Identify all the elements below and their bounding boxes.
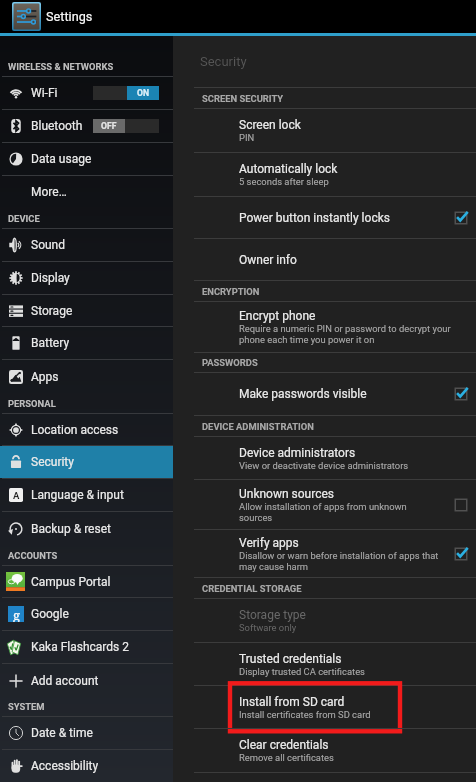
- button[interactable]: Device administrators: [173, 437, 476, 480]
- staticText: WIRELESS & NETWORKS: [8, 61, 114, 72]
- staticText: Wi-Fi: [31, 86, 58, 100]
- other: Settings app icon: [12, 2, 41, 31]
- staticText: Encrypt phone: [239, 309, 316, 323]
- staticText: Campus Portal: [31, 575, 111, 589]
- staticText: g: [13, 606, 20, 622]
- staticText: PASSWORDS: [202, 357, 258, 368]
- staticText: Remove all certificates: [239, 752, 334, 763]
- staticText: ENCRYPTION: [202, 286, 260, 297]
- button[interactable]: Data usage: [0, 143, 173, 176]
- staticText: Add account: [31, 674, 99, 688]
- button[interactable]: Accessibility: [0, 750, 173, 782]
- staticText: A: [13, 490, 20, 501]
- staticText: Power button instantly locks: [239, 211, 390, 225]
- staticText: Sound: [31, 238, 65, 252]
- button[interactable]: Apps: [0, 360, 173, 393]
- staticText: sources: [239, 512, 273, 523]
- staticText: Verify apps: [239, 536, 299, 550]
- staticText: Clear credentials: [239, 738, 329, 752]
- staticText: OFF: [101, 121, 117, 131]
- staticText: SCREEN SECURITY: [202, 93, 284, 104]
- button[interactable]: Wi-Fi: [0, 77, 173, 110]
- staticText: Security: [31, 455, 74, 469]
- button[interactable]: Date & time: [0, 717, 173, 750]
- button[interactable]: Security: [0, 446, 173, 479]
- staticText: Battery: [31, 336, 70, 350]
- staticText: Date & time: [31, 726, 93, 740]
- staticText: ACCOUNTS: [8, 550, 58, 561]
- button[interactable]: Display: [0, 262, 173, 295]
- button[interactable]: Trusted credentials: [173, 643, 476, 686]
- button[interactable]: Backup & reset: [0, 512, 173, 545]
- button[interactable]: A: [0, 479, 173, 512]
- staticText: Accessibility: [31, 759, 99, 773]
- button[interactable]: g: [0, 598, 173, 631]
- button[interactable]: Unknown sources: [173, 480, 476, 530]
- staticText: Require a numeric PIN or password to dec…: [239, 323, 451, 334]
- staticText: Software only: [239, 622, 297, 633]
- staticText: 5 seconds after sleep: [239, 176, 329, 187]
- button[interactable]: Make passwords visible: [173, 373, 476, 416]
- staticText: Display: [31, 271, 70, 285]
- button[interactable]: Battery: [0, 327, 173, 360]
- staticText: Data usage: [31, 152, 92, 166]
- button[interactable]: Screen lock: [173, 109, 476, 153]
- staticText: PIN: [239, 132, 255, 143]
- staticText: Apps: [31, 370, 59, 384]
- staticText: View or deactivate device administrators: [239, 460, 409, 471]
- staticText: Google: [31, 607, 69, 621]
- staticText: PERSONAL: [8, 398, 56, 409]
- button[interactable]: Bluetooth: [0, 110, 173, 143]
- staticText: Automatically lock: [239, 162, 338, 176]
- staticText: Unknown sources: [239, 487, 335, 501]
- button[interactable]: Verify apps: [173, 530, 476, 578]
- button[interactable]: Location access: [0, 414, 173, 446]
- button[interactable]: Campus Portal: [0, 566, 173, 598]
- staticText: Owner info: [239, 253, 297, 267]
- staticText: Trusted credentials: [239, 652, 342, 666]
- staticText: DEVICE: [8, 213, 40, 224]
- button[interactable]: More…: [0, 176, 173, 208]
- staticText: Backup & reset: [31, 522, 111, 536]
- staticText: Storage: [31, 304, 73, 318]
- staticText: Language & input: [31, 488, 124, 502]
- staticText: Kaka Flashcards 2: [31, 640, 129, 654]
- staticText: Install from SD card: [239, 695, 345, 709]
- staticText: CREDENTIAL STORAGE: [202, 583, 302, 594]
- button[interactable]: Sound: [0, 229, 173, 262]
- staticText: Security: [200, 54, 247, 69]
- staticText: SYSTEM: [8, 701, 45, 712]
- staticText: Storage type: [239, 608, 306, 622]
- staticText: Location access: [31, 423, 119, 437]
- staticText: ON: [137, 88, 150, 98]
- staticText: Display trusted CA certificates: [239, 666, 365, 677]
- button[interactable]: Encrypt phone: [173, 302, 476, 353]
- button[interactable]: Add account: [0, 664, 173, 697]
- staticText: Disallow or warn before installation of …: [239, 550, 439, 561]
- staticText: Allow installation of apps from unknown: [239, 501, 407, 512]
- button[interactable]: Automatically lock: [173, 153, 476, 197]
- staticText: Settings: [46, 9, 93, 24]
- button[interactable]: Owner info: [173, 239, 476, 281]
- button[interactable]: Clear credentials: [173, 729, 476, 773]
- staticText: Make passwords visible: [239, 387, 367, 401]
- staticText: may cause harm: [239, 561, 309, 572]
- staticText: Screen lock: [239, 118, 301, 132]
- staticText: Device administrators: [239, 446, 356, 460]
- button[interactable]: Storage: [0, 295, 173, 327]
- button[interactable]: Storage type: [173, 599, 476, 643]
- staticText: Bluetooth: [31, 119, 83, 133]
- button[interactable]: Kaka Flashcards 2: [0, 631, 173, 664]
- button[interactable]: Power button instantly locks: [173, 197, 476, 239]
- staticText: phone each time you power it on: [239, 334, 375, 345]
- staticText: More…: [31, 185, 67, 199]
- staticText: Install certificates from SD card: [239, 709, 371, 720]
- button[interactable]: Install from SD card: [173, 686, 476, 729]
- staticText: DEVICE ADMINISTRATION: [202, 421, 314, 432]
